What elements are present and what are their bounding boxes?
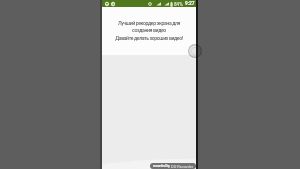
staticText: recorded by	[153, 164, 171, 168]
staticText: 9:27	[185, 1, 195, 7]
button[interactable]: Recorder floating button	[188, 44, 202, 58]
staticText: DU Recorder	[171, 164, 194, 169]
staticText: Лучший рекордер экрана для создания виде…	[115, 20, 183, 41]
staticText: 84%	[174, 2, 183, 7]
